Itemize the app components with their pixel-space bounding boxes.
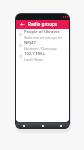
button[interactable]: Back bbox=[22, 124, 26, 128]
staticText: Local / News bbox=[24, 58, 43, 62]
staticText: Radio and art mix-ups for free bbox=[24, 36, 67, 40]
button[interactable]: Back bbox=[18, 20, 26, 28]
button[interactable]: NRJ47 bbox=[16, 40, 69, 51]
staticText: People of Ukraine Radio bbox=[24, 29, 67, 35]
staticText: Radio groups bbox=[28, 21, 58, 27]
staticText: 102.7 FM-L bbox=[24, 51, 46, 57]
button[interactable]: 102.7 FM-L bbox=[16, 51, 69, 62]
button[interactable]: Recents bbox=[59, 124, 63, 128]
button[interactable]: Home bbox=[41, 124, 45, 128]
staticText: NRJ47 bbox=[24, 40, 36, 46]
staticText: Electronic / Chart pop bbox=[24, 47, 57, 51]
button[interactable]: People of Ukraine Radio bbox=[16, 29, 69, 40]
